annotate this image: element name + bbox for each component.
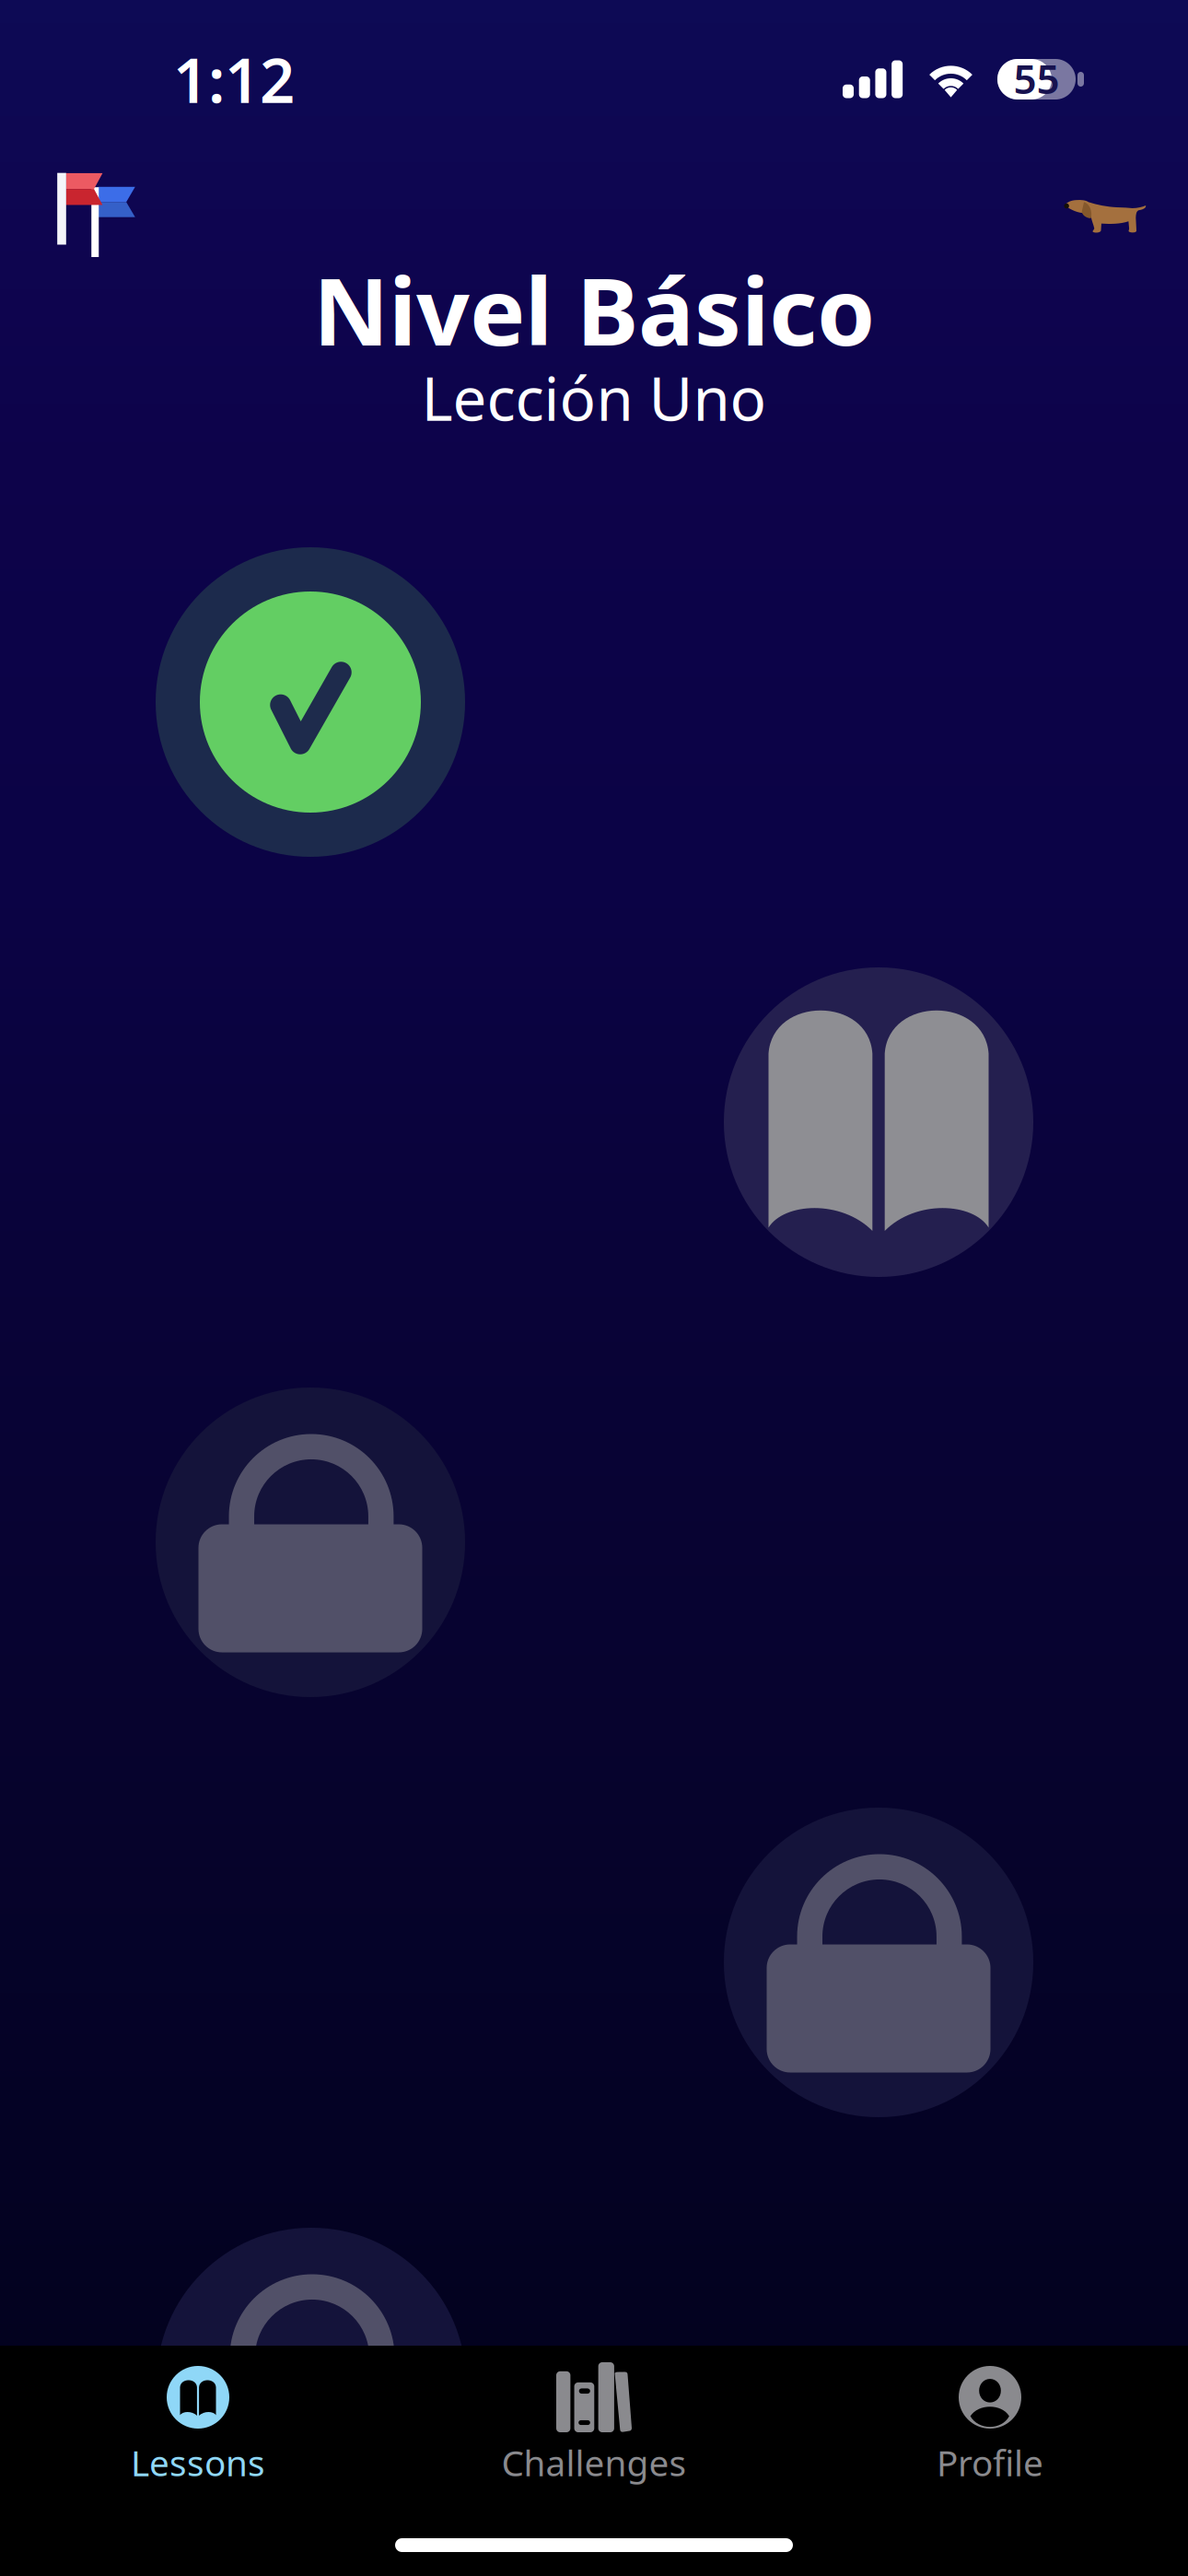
button[interactable]: Lesson 2, available	[724, 967, 1033, 1277]
button[interactable]: Mascot	[1050, 160, 1160, 270]
button[interactable]: Lesson 1, completed	[156, 547, 465, 857]
staticText: Nivel Básico	[313, 247, 875, 371]
staticText: Challenges	[501, 2439, 687, 2486]
staticText: Profile	[937, 2439, 1043, 2486]
staticText: Lección Uno	[421, 357, 767, 437]
button[interactable]: Lesson 5, locked	[157, 2228, 466, 2537]
button[interactable]: Profile	[792, 2346, 1188, 2486]
staticText: 1:12	[173, 38, 295, 120]
button[interactable]: Lesson 4, locked	[724, 1808, 1033, 2117]
button[interactable]: Challenges	[396, 2346, 792, 2486]
staticText: 55	[1013, 51, 1060, 105]
staticText: Lessons	[131, 2439, 265, 2486]
button[interactable]: Change language	[41, 160, 152, 270]
button[interactable]: Lesson 3, locked	[156, 1388, 465, 1697]
button[interactable]: Lessons	[0, 2346, 396, 2486]
